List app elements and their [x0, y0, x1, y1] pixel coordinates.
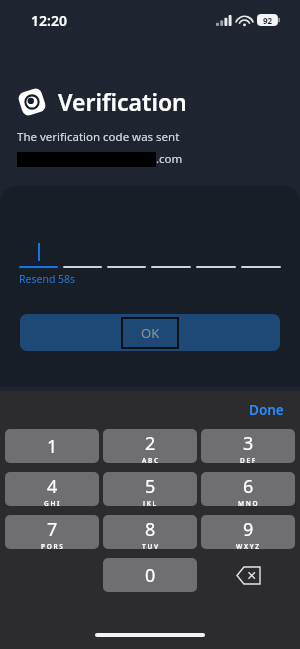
- button[interactable]: 6: [201, 472, 295, 506]
- staticText: 4: [47, 474, 58, 499]
- button[interactable]: 1: [5, 429, 99, 463]
- button[interactable]: 3: [201, 429, 295, 463]
- staticText: 3: [243, 431, 254, 456]
- staticText: 0: [145, 563, 156, 588]
- button[interactable]: 5: [103, 472, 197, 506]
- button[interactable]: OK: [20, 314, 280, 351]
- button[interactable]: 9: [201, 515, 295, 549]
- button[interactable]: 2: [103, 429, 197, 463]
- staticText: OK: [141, 324, 160, 342]
- staticText: G H I: [44, 499, 60, 506]
- button[interactable]: Backspace: [201, 558, 295, 592]
- button[interactable]: 8: [103, 515, 197, 549]
- button[interactable]: [19, 243, 281, 268]
- staticText: T U V: [142, 542, 159, 549]
- staticText: 8: [145, 517, 156, 542]
- staticText: 2: [145, 431, 156, 456]
- staticText: A B C: [142, 456, 159, 463]
- staticText: Verification: [58, 86, 187, 117]
- staticText: M N O: [238, 499, 258, 506]
- staticText: 6: [243, 474, 254, 499]
- staticText: D E F: [240, 456, 256, 463]
- staticText: 7: [47, 517, 58, 542]
- button[interactable]: 0: [103, 558, 197, 592]
- button[interactable]: 4: [5, 472, 99, 506]
- button[interactable]: Done: [243, 397, 290, 423]
- staticText: 5: [145, 474, 156, 499]
- staticText: 9: [243, 517, 254, 542]
- button[interactable]: 7: [5, 515, 99, 549]
- staticText: 12:20: [31, 11, 67, 30]
- staticText: J K L: [143, 499, 157, 506]
- staticText: 1: [47, 434, 58, 459]
- button[interactable]: Resend 58s: [19, 272, 76, 286]
- staticText: P Q R S: [41, 542, 63, 549]
- staticText: 92: [263, 15, 273, 26]
- staticText: .com: [156, 151, 183, 167]
- staticText: Done: [249, 401, 284, 419]
- staticText: W X Y Z: [236, 542, 260, 549]
- staticText: The verification code was sent: [17, 129, 180, 145]
